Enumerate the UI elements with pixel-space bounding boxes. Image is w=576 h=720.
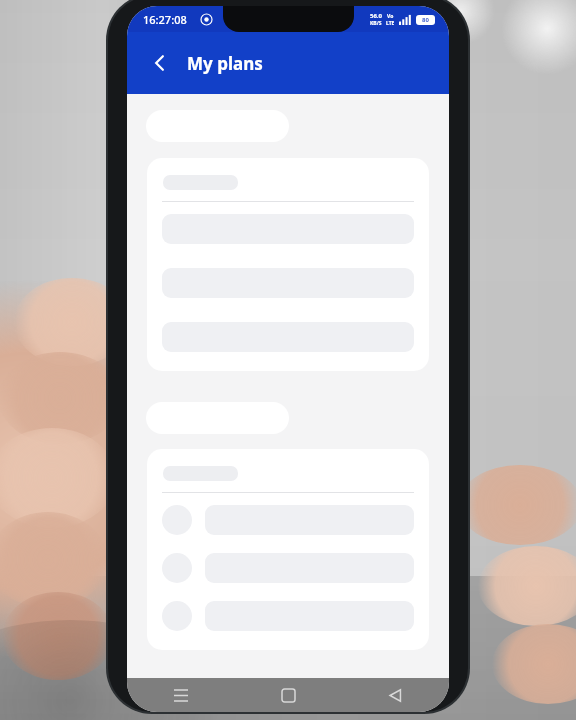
button[interactable]: Back	[141, 44, 179, 82]
staticText: 16:27:08	[143, 12, 187, 27]
staticText: 56.0	[370, 12, 382, 20]
staticText: LTE	[386, 20, 395, 27]
button[interactable]: Back	[342, 678, 449, 712]
staticText: Vo	[387, 13, 394, 20]
button[interactable]: Recent apps	[127, 678, 235, 712]
button[interactable]	[147, 158, 429, 371]
button[interactable]: Home	[235, 678, 342, 712]
staticText: 80	[422, 16, 429, 24]
button[interactable]	[147, 449, 429, 650]
staticText: KB/S	[370, 20, 382, 27]
staticText: My plans	[187, 52, 263, 75]
